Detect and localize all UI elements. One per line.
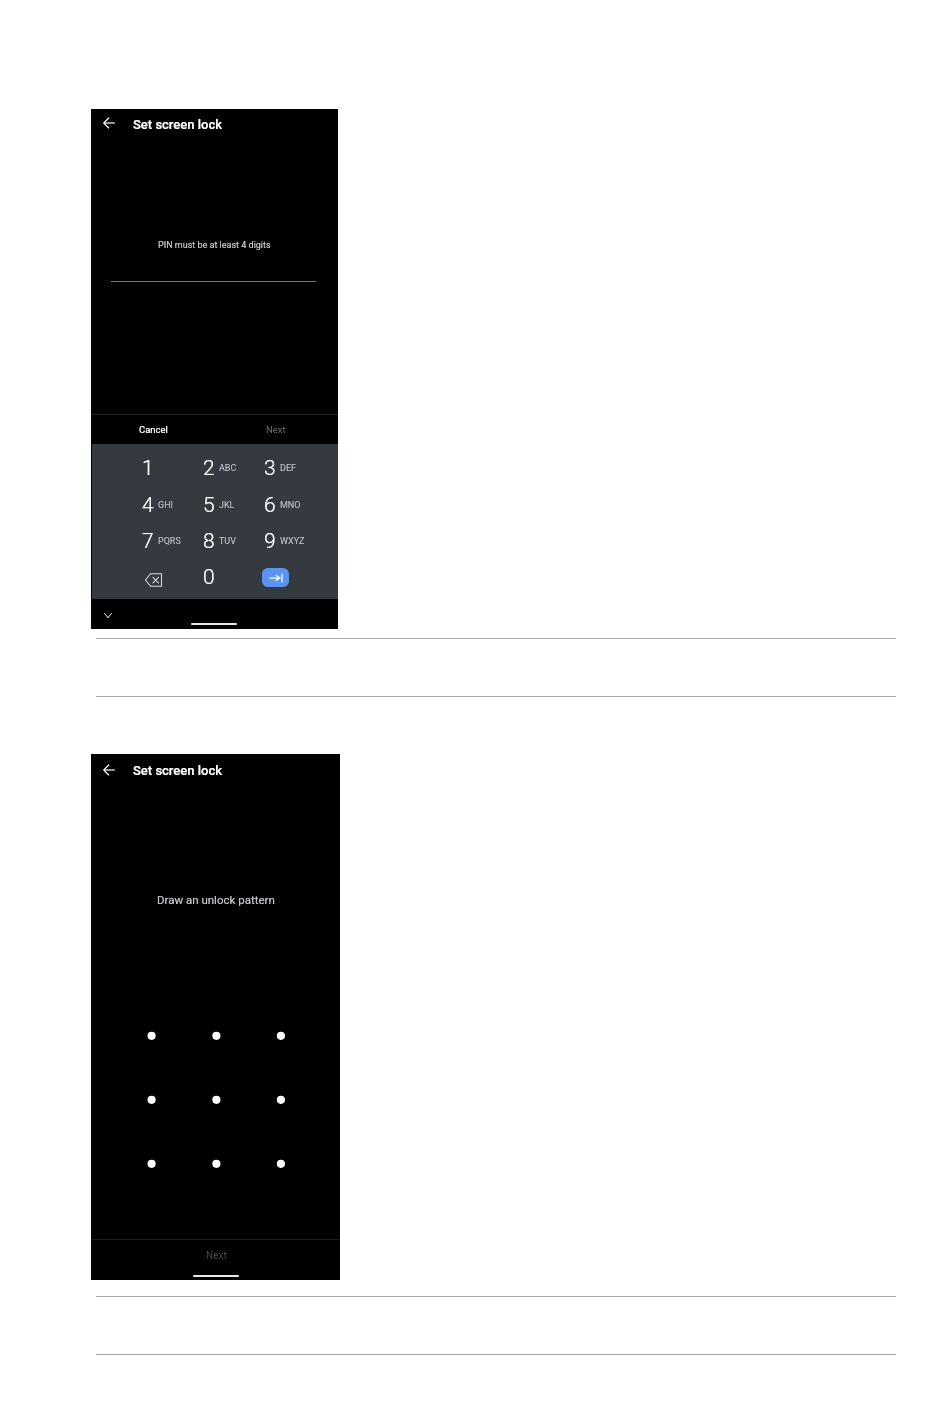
staticText: Set screen lock: [133, 117, 222, 132]
button[interactable]: 4: [122, 486, 183, 525]
staticText: 4: [142, 493, 154, 518]
button[interactable]: 9: [244, 522, 305, 561]
button[interactable]: 8: [183, 522, 244, 561]
staticText: 7: [142, 529, 154, 554]
button[interactable]: 5: [183, 486, 244, 525]
staticText: WXYZ: [280, 536, 305, 547]
staticText: 8: [203, 529, 215, 554]
staticText: MNO: [280, 500, 301, 511]
button[interactable]: Next: [246, 415, 306, 444]
button[interactable]: Back: [96, 110, 122, 136]
staticText: 6: [264, 493, 276, 518]
staticText: PIN must be at least 4 digits: [158, 240, 271, 251]
button[interactable]: 7: [122, 522, 183, 561]
button[interactable]: Cancel: [123, 415, 183, 444]
staticText: 9: [264, 529, 276, 554]
button[interactable]: 1: [122, 449, 183, 488]
staticText: ABC: [219, 463, 237, 474]
staticText: 1: [142, 456, 154, 481]
staticText: Cancel: [139, 424, 168, 435]
staticText: 5: [203, 493, 215, 518]
button[interactable]: 2: [183, 449, 244, 488]
staticText: Set screen lock: [133, 763, 222, 778]
button[interactable]: Next: [186, 1245, 246, 1267]
staticText: Next: [206, 1250, 227, 1262]
button[interactable]: Next: [262, 568, 289, 587]
staticText: 0: [203, 565, 215, 590]
staticText: 3: [264, 456, 276, 481]
button[interactable]: 0: [183, 558, 244, 597]
staticText: Draw an unlock pattern: [157, 893, 275, 906]
staticText: GHI: [158, 500, 173, 511]
staticText: Next: [266, 424, 286, 435]
button[interactable]: Hide keyboard: [97, 605, 118, 626]
staticText: PQRS: [158, 536, 181, 547]
button[interactable]: Back: [96, 757, 122, 783]
staticText: TUV: [219, 536, 236, 547]
staticText: JKL: [219, 500, 235, 511]
staticText: 2: [203, 456, 215, 481]
button[interactable]: Backspace: [123, 560, 184, 599]
button[interactable]: 6: [244, 486, 305, 525]
button[interactable]: 3: [244, 449, 305, 488]
staticText: DEF: [280, 463, 296, 474]
